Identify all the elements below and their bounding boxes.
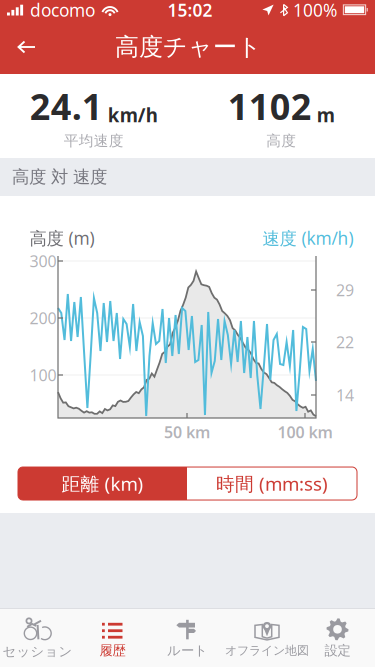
staticText: セッション: [2, 643, 72, 660]
staticText: 22: [336, 331, 354, 353]
staticText: 高度: [266, 132, 296, 150]
button[interactable]: Back: [0, 25, 48, 69]
staticText: 履歴: [99, 642, 125, 659]
staticText: 100: [29, 364, 56, 386]
staticText: m: [317, 103, 335, 127]
staticText: 高度チャート: [115, 32, 262, 62]
staticText: 平均速度: [64, 132, 124, 150]
staticText: 14: [336, 384, 354, 406]
button[interactable]: ルート: [150, 613, 225, 663]
button[interactable]: 距離 (km): [18, 467, 187, 500]
staticText: km/h: [108, 103, 158, 127]
button[interactable]: 設定: [300, 613, 375, 663]
staticText: 高度 (m): [29, 226, 94, 249]
staticText: 設定: [324, 642, 350, 659]
staticText: 200: [29, 307, 56, 329]
button[interactable]: 履歴: [75, 613, 150, 663]
staticText: 100 km: [277, 421, 332, 443]
staticText: 50 km: [164, 421, 210, 443]
staticText: 時間 (mm:ss): [216, 471, 328, 496]
button[interactable]: オフライン地図: [225, 613, 300, 663]
staticText: 300: [29, 250, 56, 272]
staticText: 15:02: [167, 0, 212, 21]
staticText: 速度 (km/h): [262, 226, 353, 249]
staticText: docomo: [30, 0, 95, 21]
staticText: 29: [336, 279, 354, 301]
button[interactable]: セッション: [0, 613, 75, 663]
button[interactable]: 時間 (mm:ss): [187, 467, 357, 500]
staticText: 1102: [228, 82, 312, 130]
staticText: 100%: [293, 0, 337, 21]
staticText: ルート: [167, 642, 208, 659]
staticText: 高度 対 速度: [12, 166, 107, 188]
staticText: 24.1: [30, 82, 103, 130]
staticText: 距離 (km): [61, 471, 143, 496]
staticText: オフライン地図: [225, 643, 309, 658]
